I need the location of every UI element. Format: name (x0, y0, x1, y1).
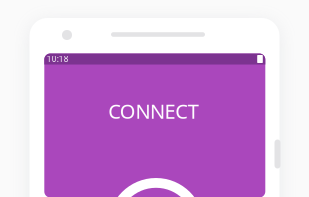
staticText: CONNECT (108, 98, 199, 124)
staticText: 10:18 (47, 54, 69, 64)
